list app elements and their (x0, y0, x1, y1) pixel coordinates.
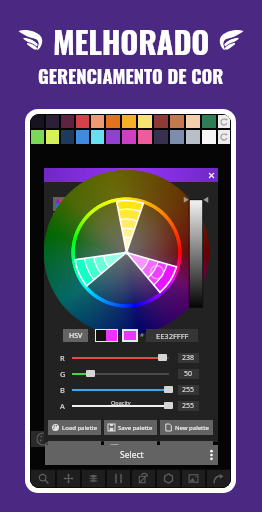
staticText: 255 (182, 401, 195, 411)
staticText: EE32FFFF (156, 331, 189, 341)
staticText: Save color (121, 445, 150, 453)
staticText: GERENCIAMENTO DE COR (38, 62, 224, 89)
staticText: 50 (184, 369, 193, 379)
button[interactable]: New palette (160, 420, 213, 435)
button[interactable]: G (72, 367, 169, 380)
staticText: A (60, 401, 65, 411)
staticText: G (60, 369, 66, 379)
button[interactable]: More options (204, 445, 218, 465)
staticText: # (140, 331, 144, 339)
button[interactable]: Layers (82, 470, 105, 487)
button[interactable]: EE32FFFF (146, 329, 198, 342)
staticText: Color picker (110, 170, 153, 180)
staticText: R (60, 353, 65, 363)
button[interactable]: Redo (207, 470, 230, 487)
button[interactable]: R (72, 351, 169, 364)
button[interactable]: Refresh palette (218, 130, 230, 144)
button[interactable]: Image (182, 470, 205, 487)
button[interactable]: Save palette (104, 420, 157, 435)
button[interactable]: Refresh palette (218, 115, 230, 128)
staticText: 238 (182, 353, 195, 363)
button[interactable]: Harmony (53, 213, 67, 227)
button[interactable]: Load palette (48, 420, 101, 435)
button[interactable]: Delete color (160, 441, 213, 456)
button[interactable]: Close (204, 168, 218, 182)
button[interactable]: Move (57, 470, 80, 487)
button[interactable]: Frames (107, 470, 130, 487)
button[interactable]: Shape (157, 470, 180, 487)
button[interactable]: Lock (53, 229, 67, 243)
staticText: 255 (182, 385, 195, 395)
staticText: New palette (175, 424, 209, 432)
staticText: Save palette (118, 424, 153, 432)
button[interactable]: Zoom (31, 470, 55, 487)
staticText: Opacity (111, 399, 131, 406)
staticText: Select (120, 449, 144, 461)
staticText: Load palette (62, 424, 98, 432)
button[interactable]: B (72, 383, 169, 396)
staticText: B (60, 385, 65, 395)
button[interactable]: Previous colour (96, 330, 117, 341)
button[interactable]: HSV (63, 329, 88, 342)
staticText: MELHORADO (53, 18, 210, 64)
button[interactable]: Palette (31, 431, 55, 447)
button[interactable]: A (72, 399, 169, 412)
button[interactable]: swatch (31, 115, 44, 128)
staticText: HSV (69, 331, 83, 341)
button[interactable]: Color wheel (53, 197, 67, 211)
button[interactable]: Select (45, 445, 218, 465)
button[interactable]: Transform (132, 470, 155, 487)
button[interactable]: Color picker (44, 168, 218, 182)
button[interactable]: Save color (104, 441, 157, 456)
